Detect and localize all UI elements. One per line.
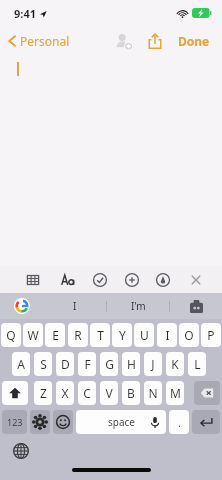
button[interactable]: Add People <box>110 28 136 54</box>
button[interactable]: L <box>188 352 206 376</box>
staticText: I <box>73 299 77 313</box>
button[interactable]: B <box>122 381 140 405</box>
button[interactable]: Backspace <box>194 381 220 405</box>
button[interactable]: D <box>56 352 74 376</box>
staticText: L <box>194 356 201 372</box>
staticText: K <box>171 356 179 372</box>
button[interactable]: S <box>34 352 52 376</box>
staticText: R <box>74 327 82 343</box>
button[interactable]: R <box>68 323 88 347</box>
button[interactable]: F <box>78 352 96 376</box>
staticText: 9:41 <box>14 6 36 21</box>
button[interactable]: Return <box>192 410 220 434</box>
staticText: J <box>151 356 155 372</box>
button[interactable]: Google <box>0 293 44 319</box>
staticText: 123 <box>7 416 23 428</box>
button[interactable]: Add <box>119 266 145 293</box>
button[interactable]: Table <box>20 266 46 293</box>
staticText: M <box>170 385 181 401</box>
button[interactable]: 123 <box>2 410 27 434</box>
staticText: Y <box>119 327 126 343</box>
button[interactable]: Z <box>34 381 52 405</box>
staticText: D <box>61 356 70 372</box>
staticText: U <box>140 327 149 343</box>
staticText: Q <box>6 327 16 343</box>
button[interactable]: Close <box>183 266 209 293</box>
button[interactable]: M <box>166 381 184 405</box>
button[interactable]: T <box>90 323 110 347</box>
staticText: V <box>105 385 113 401</box>
staticText: A <box>17 356 25 372</box>
button[interactable]: I <box>44 293 106 319</box>
button[interactable]: W <box>23 323 43 347</box>
staticText: G <box>105 356 114 372</box>
button[interactable]: Clipboard <box>170 293 222 319</box>
button[interactable]: Done <box>174 29 214 53</box>
staticText: X <box>61 385 69 401</box>
staticText: F <box>84 356 91 372</box>
staticText: space <box>108 415 135 429</box>
button[interactable]: Emoji <box>53 410 73 434</box>
button[interactable]: Shift <box>2 381 28 405</box>
button[interactable]: A <box>12 352 30 376</box>
button[interactable]: Switch keyboard <box>10 440 32 462</box>
staticText: S <box>40 356 47 372</box>
button[interactable]: V <box>100 381 118 405</box>
button[interactable]: space <box>76 410 166 434</box>
button[interactable]: P <box>201 323 221 347</box>
staticText: . <box>178 415 181 430</box>
button[interactable]: K <box>166 352 184 376</box>
button[interactable]: O <box>179 323 199 347</box>
staticText: T <box>97 327 104 343</box>
staticText: H <box>127 356 136 372</box>
button[interactable]: I <box>157 323 177 347</box>
staticText: Personal <box>20 33 70 49</box>
button[interactable]: Markup <box>150 266 176 293</box>
button[interactable]: Share <box>142 28 168 54</box>
button[interactable]: . <box>169 410 189 434</box>
staticText: Z <box>40 385 47 401</box>
button[interactable]: N <box>144 381 162 405</box>
staticText: E <box>52 327 59 343</box>
button[interactable]: Checklist <box>87 266 113 293</box>
button[interactable]: Format <box>55 266 81 293</box>
staticText: I'm <box>131 299 146 313</box>
staticText: W <box>27 327 39 343</box>
button[interactable]: Personal <box>0 29 76 53</box>
button[interactable]: X <box>56 381 74 405</box>
button[interactable]: G <box>100 352 118 376</box>
button[interactable]: J <box>144 352 162 376</box>
staticText: B <box>127 385 135 401</box>
button[interactable]: I'm <box>107 293 169 319</box>
staticText: I <box>165 327 170 343</box>
button[interactable]: U <box>134 323 154 347</box>
button[interactable]: E <box>45 323 65 347</box>
button[interactable]: Q <box>1 323 21 347</box>
button[interactable]: Y <box>112 323 132 347</box>
button[interactable]: C <box>78 381 96 405</box>
staticText: P <box>207 327 215 343</box>
staticText: O <box>184 327 194 343</box>
button[interactable]: H <box>122 352 140 376</box>
staticText: N <box>148 385 158 401</box>
staticText: Done <box>178 33 210 49</box>
staticText: C <box>83 385 91 401</box>
button[interactable]: Settings <box>30 410 50 434</box>
